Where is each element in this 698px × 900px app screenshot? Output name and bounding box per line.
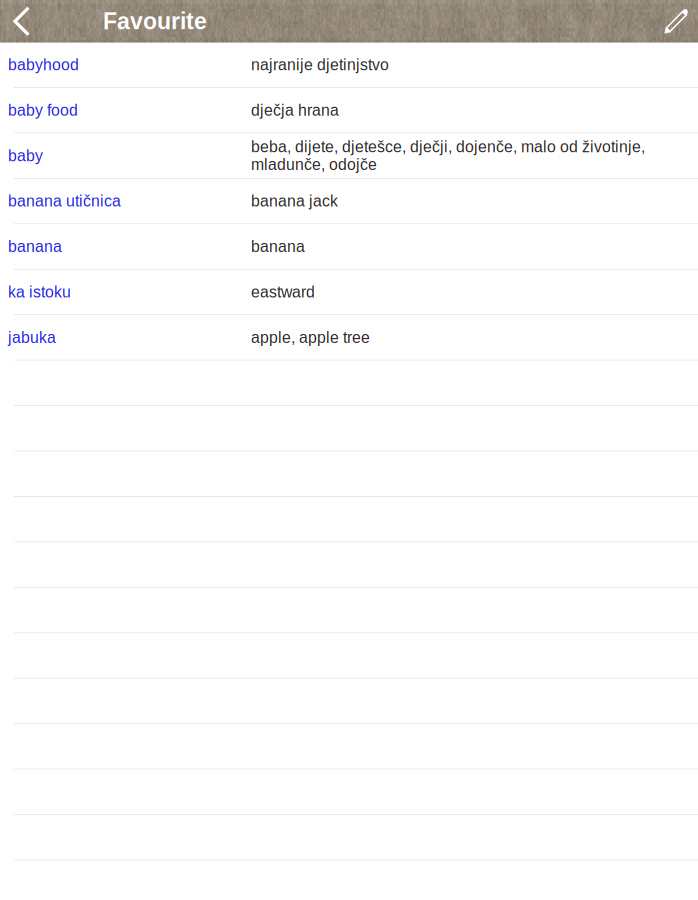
staticText: apple, apple tree <box>251 329 370 346</box>
button[interactable]: jabuka <box>0 315 698 361</box>
staticText: banana utičnica <box>8 192 121 210</box>
button[interactable]: babyhood <box>0 43 698 88</box>
staticText: dječja hrana <box>251 101 339 119</box>
staticText: jabuka <box>8 329 56 346</box>
staticText: baby food <box>8 101 78 119</box>
button[interactable]: baby food <box>0 88 698 133</box>
button[interactable]: baby <box>0 133 698 179</box>
staticText: beba, dijete, djetešce, dječji, dojenče,… <box>251 138 645 173</box>
staticText: banana <box>251 238 305 255</box>
staticText: eastward <box>251 283 315 301</box>
button[interactable]: banana <box>0 224 698 270</box>
button[interactable]: Edit <box>654 0 698 43</box>
button[interactable]: ka istoku <box>0 270 698 315</box>
staticText: banana <box>8 238 62 255</box>
button[interactable]: Back <box>0 0 44 43</box>
staticText: baby <box>8 147 43 165</box>
staticText: banana jack <box>251 192 338 210</box>
staticText: najranije djetinjstvo <box>251 56 389 74</box>
staticText: babyhood <box>8 56 79 74</box>
staticText: ka istoku <box>8 283 71 301</box>
button[interactable]: banana utičnica <box>0 179 698 224</box>
staticText: Favourite <box>103 8 207 34</box>
